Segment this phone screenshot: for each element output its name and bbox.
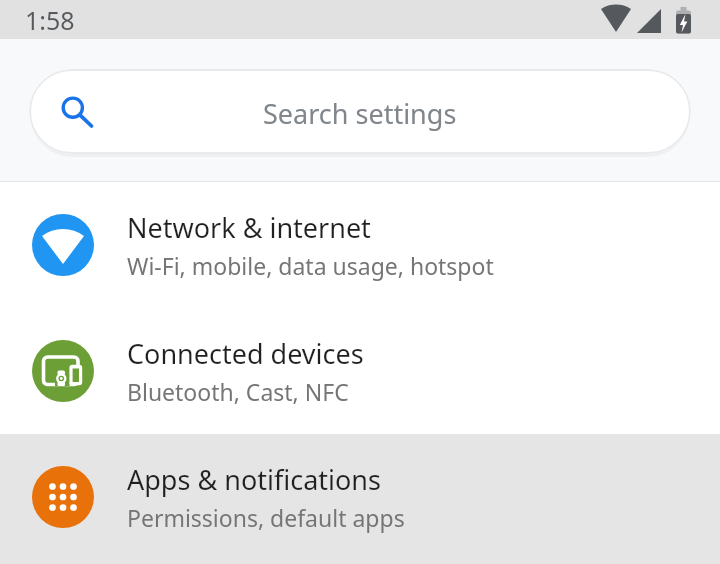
staticText: Bluetooth, Cast, NFC (127, 376, 349, 407)
staticText: Network & internet (127, 209, 371, 246)
button[interactable]: Connected devices (0, 308, 720, 434)
staticText: 1:58 (25, 3, 75, 37)
button[interactable]: Search settings (29, 69, 691, 154)
staticText: Apps & notifications (127, 461, 381, 498)
staticText: Permissions, default apps (127, 502, 405, 533)
button[interactable]: Network & internet (0, 182, 720, 308)
staticText: Search settings (263, 95, 457, 132)
staticText: Wi-Fi, mobile, data usage, hotspot (127, 250, 494, 281)
button[interactable]: Apps & notifications (0, 434, 720, 560)
staticText: Connected devices (127, 335, 364, 372)
